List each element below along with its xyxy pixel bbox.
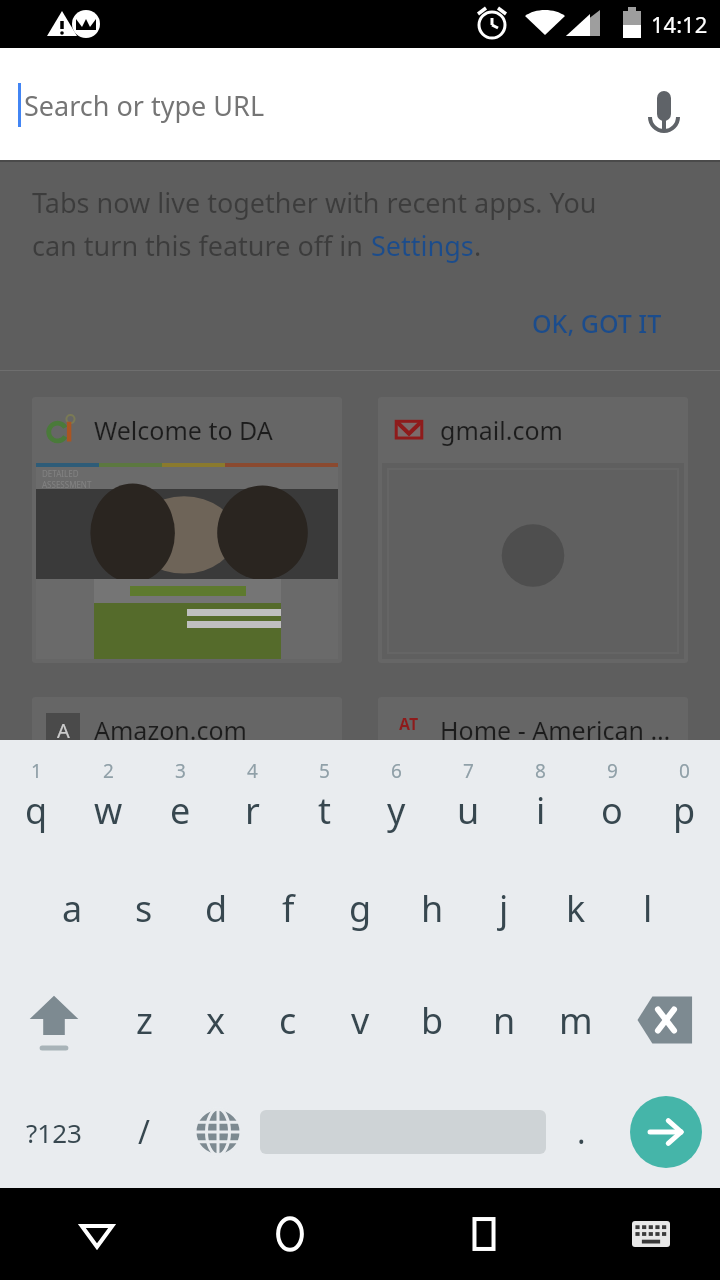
button[interactable]: OK, GOT IT (524, 298, 670, 348)
staticText: w (94, 786, 123, 835)
button[interactable]: Go (612, 1076, 720, 1188)
staticText: i (536, 786, 546, 835)
button[interactable]: Change keyboard language (180, 1076, 256, 1188)
button[interactable]: Hide keyboard (581, 1188, 720, 1280)
staticText: u (457, 786, 480, 835)
staticText: h (421, 884, 444, 933)
staticText: m (559, 996, 593, 1045)
button[interactable]: f (252, 852, 324, 964)
button[interactable]: c (252, 964, 324, 1076)
staticText: 6 (391, 758, 402, 784)
staticText: y (387, 786, 406, 835)
staticText: 40 (400, 735, 419, 747)
button[interactable]: / (108, 1076, 180, 1188)
staticText: 5 (319, 758, 330, 784)
staticText: a (62, 884, 83, 933)
staticText: 1 (31, 758, 42, 784)
button[interactable]: 6 (360, 740, 432, 852)
button[interactable]: a (36, 852, 108, 964)
staticText: . (577, 1110, 586, 1154)
staticText: t (318, 786, 331, 835)
staticText: A (57, 717, 70, 744)
staticText: r (245, 786, 260, 835)
staticText: 14:12 (651, 9, 708, 39)
staticText: 9 (607, 758, 618, 784)
button[interactable]: Back (0, 1188, 193, 1280)
staticText: Welcome to DA (94, 413, 273, 447)
button[interactable]: 0 (648, 740, 720, 852)
button[interactable]: 8 (504, 740, 576, 852)
staticText: 3 (175, 758, 186, 784)
button[interactable]: Voice search (636, 77, 692, 133)
button[interactable]: v (324, 964, 396, 1076)
button[interactable]: j (468, 852, 540, 964)
staticText: 8 (535, 758, 546, 784)
staticText: s (135, 884, 153, 933)
button[interactable]: Shift (0, 964, 108, 1076)
button[interactable]: Settings (371, 227, 474, 264)
staticText: b (421, 996, 444, 1045)
staticText: Tabs now live together with recent apps.… (32, 184, 597, 221)
button[interactable]: 2 (72, 740, 144, 852)
staticText: p (673, 786, 696, 835)
staticText: e (170, 786, 191, 835)
button[interactable]: d (180, 852, 252, 964)
button[interactable]: 3 (144, 740, 216, 852)
staticText: / (138, 1110, 150, 1154)
staticText: g (349, 884, 372, 933)
staticText: c (279, 996, 297, 1045)
staticText: k (566, 884, 586, 933)
staticText: 7 (463, 758, 474, 784)
staticText: q (25, 786, 48, 835)
staticText: d (205, 884, 228, 933)
button[interactable]: Welcome to DA (32, 397, 342, 663)
button[interactable]: 7 (432, 740, 504, 852)
staticText: can turn this feature off in (32, 227, 371, 264)
button[interactable]: gmail.com (378, 397, 688, 663)
button[interactable]: Backspace (612, 964, 720, 1076)
staticText: o (601, 786, 623, 835)
staticText: Search or type URL (24, 87, 265, 124)
button[interactable]: b (396, 964, 468, 1076)
button[interactable]: AT (378, 697, 688, 883)
staticText: n (493, 996, 516, 1045)
button[interactable]: s (108, 852, 180, 964)
staticText: j (499, 884, 509, 933)
button[interactable]: 9 (576, 740, 648, 852)
staticText: Amazon.com (94, 713, 247, 747)
staticText: DETAILED ASSESSMENT (42, 468, 92, 489)
button[interactable]: A (32, 697, 342, 883)
button[interactable]: 4 (216, 740, 288, 852)
button[interactable]: z (108, 964, 180, 1076)
button[interactable]: l (612, 852, 684, 964)
staticText: v (351, 996, 370, 1045)
button[interactable]: m (540, 964, 612, 1076)
button[interactable]: Recent apps (387, 1188, 581, 1280)
staticText: 0 (679, 758, 690, 784)
staticText: OK, GOT IT (532, 306, 662, 340)
staticText: l (643, 884, 653, 933)
button[interactable]: n (468, 964, 540, 1076)
staticText: . (474, 227, 482, 264)
button[interactable]: 5 (288, 740, 360, 852)
staticText: z (136, 996, 153, 1045)
staticText: Home - American To… (440, 713, 674, 747)
button[interactable]: . (550, 1076, 612, 1188)
staticText: gmail.com (440, 413, 563, 447)
button[interactable]: k (540, 852, 612, 964)
button[interactable]: 1 (0, 740, 72, 852)
staticText: 2 (103, 758, 114, 784)
staticText: ?123 (26, 1115, 82, 1150)
button[interactable]: h (396, 852, 468, 964)
button[interactable]: ?123 (0, 1076, 108, 1188)
staticText: AT (399, 713, 419, 735)
staticText: 4 (247, 758, 258, 784)
button[interactable]: Home (193, 1188, 387, 1280)
staticText: x (206, 996, 226, 1045)
button[interactable]: x (180, 964, 252, 1076)
button[interactable]: g (324, 852, 396, 964)
button[interactable]: Search or type URL (0, 48, 720, 162)
staticText: f (282, 884, 295, 933)
